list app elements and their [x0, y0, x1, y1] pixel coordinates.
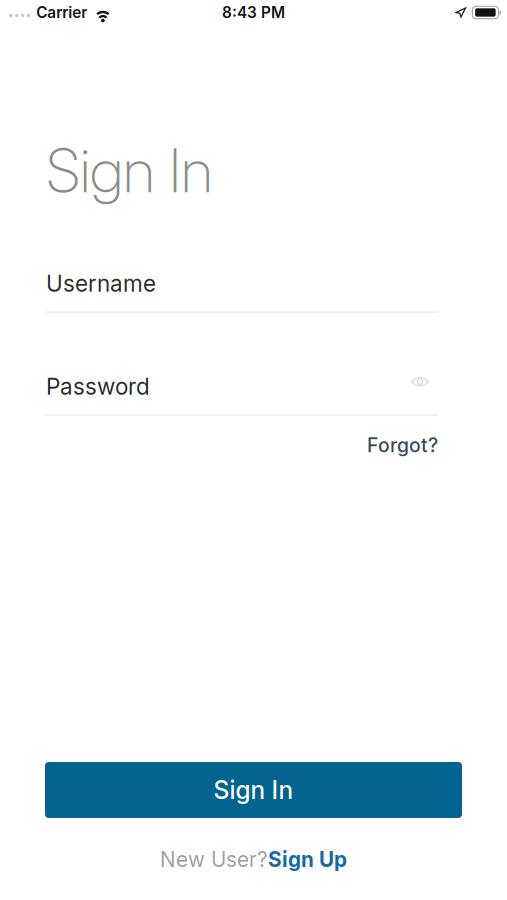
button[interactable]: Forgot? — [367, 430, 438, 461]
staticText: Forgot? — [367, 434, 438, 457]
button[interactable]: Sign In — [45, 762, 462, 818]
staticText: Sign In — [46, 134, 213, 207]
staticText: New User? — [160, 847, 268, 872]
staticText: Sign In — [213, 775, 293, 805]
staticText: Carrier — [36, 3, 87, 22]
button[interactable]: New User? — [155, 842, 352, 877]
staticText: Password — [46, 373, 150, 400]
staticText: 8:43 PM — [222, 3, 285, 22]
button[interactable]: Show password — [402, 375, 438, 399]
staticText: Sign Up — [268, 847, 347, 872]
staticText: Username — [46, 270, 156, 297]
